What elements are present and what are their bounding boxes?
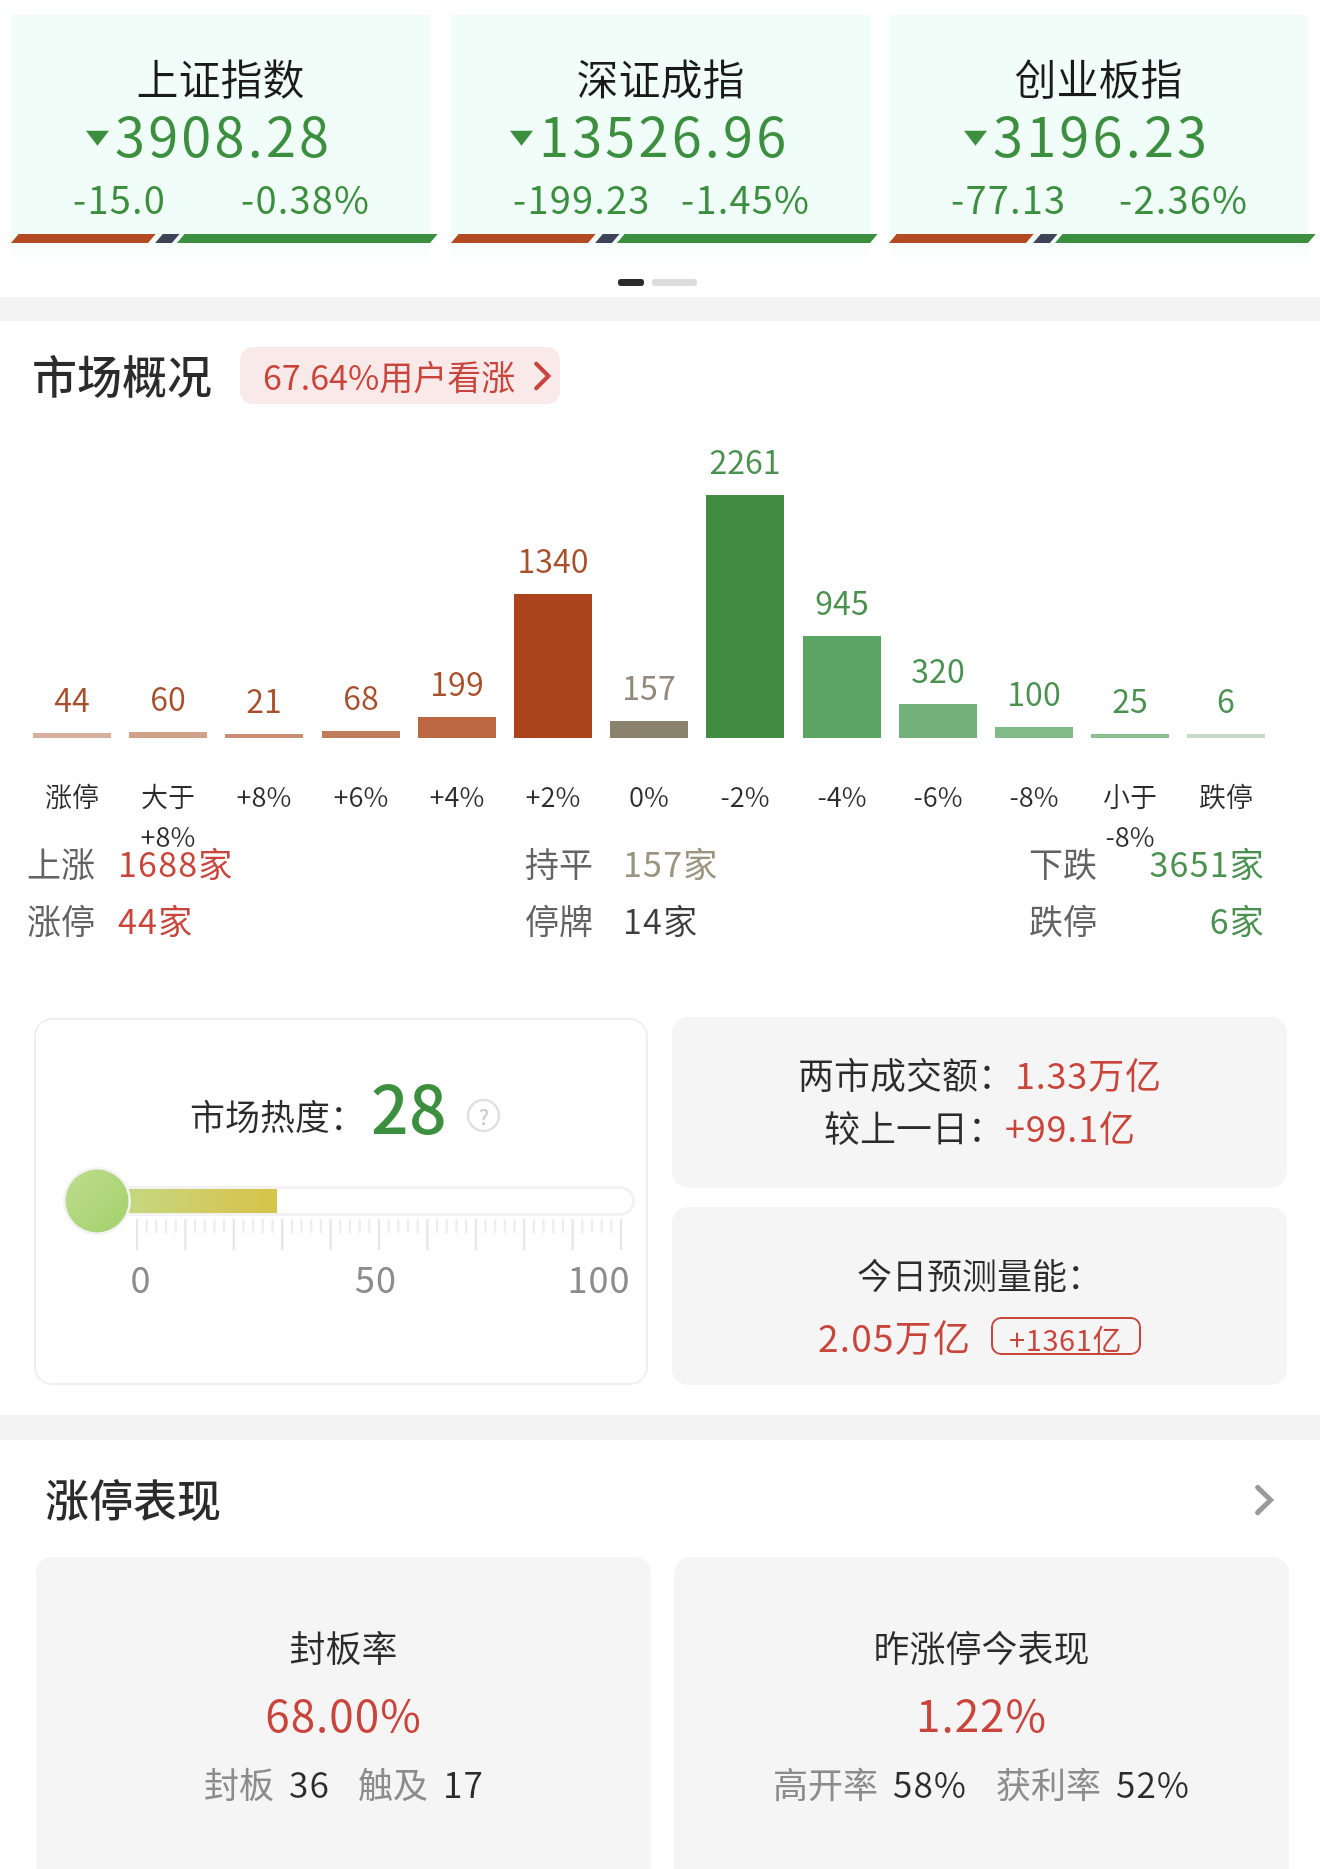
staticText: 52% — [1116, 1757, 1191, 1808]
staticText: 市场热度： — [190, 1089, 366, 1140]
staticText: 945 — [778, 578, 906, 624]
staticText: 50 — [326, 1251, 426, 1303]
staticText: -15.0 — [73, 170, 167, 225]
staticText: 较上一日： — [824, 1100, 1005, 1152]
staticText: +99.1亿 — [1005, 1100, 1136, 1152]
staticText: +2% — [489, 776, 617, 815]
staticText: 60 — [104, 674, 232, 720]
staticText: 157 — [585, 663, 713, 709]
staticText: -0.38% — [241, 170, 371, 225]
staticText: -6% — [874, 776, 1002, 815]
staticText: 6 — [1162, 676, 1290, 722]
staticText: 44家 — [118, 895, 194, 944]
button[interactable]: 67.64%用户看涨 — [240, 347, 560, 404]
staticText: 小于 -8% — [1066, 776, 1194, 855]
staticText: -1.45% — [681, 170, 811, 225]
staticText: 3196.23 — [993, 94, 1211, 172]
staticText: 上涨 — [27, 838, 95, 887]
button[interactable]: 昨涨停今表现 — [674, 1557, 1289, 1869]
staticText: 0 — [91, 1251, 191, 1303]
staticText: 两市成交额： — [798, 1047, 1015, 1099]
staticText: 持平 — [525, 838, 593, 887]
staticText: 上证指数 — [11, 46, 430, 107]
staticText: -199.23 — [513, 170, 651, 225]
staticText: 157家 — [623, 838, 719, 887]
staticText: 深证成指 — [451, 46, 870, 107]
staticText: ? — [479, 1101, 489, 1131]
staticText: 涨停表现 — [45, 1466, 221, 1530]
staticText: 1688家 — [118, 838, 234, 887]
staticText: 68 — [297, 673, 425, 719]
button[interactable]: More — [1234, 1470, 1294, 1530]
staticText: 跌停 — [1162, 776, 1290, 815]
staticText: 3651家 — [1030, 838, 1265, 887]
staticText: 1340 — [489, 536, 617, 582]
staticText: 3908.28 — [115, 94, 333, 172]
staticText: +6% — [297, 776, 425, 815]
staticText: 68.00% — [36, 1681, 651, 1745]
staticText: 100 — [970, 669, 1098, 715]
staticText: -4% — [778, 776, 906, 815]
button[interactable]: 市场热度： — [34, 1018, 648, 1385]
staticText: 高开率 — [773, 1757, 879, 1808]
staticText: 28 — [371, 1057, 448, 1153]
staticText: -2% — [681, 776, 809, 815]
button[interactable]: 今日预测量能： — [672, 1207, 1287, 1385]
staticText: 2261 — [681, 437, 809, 483]
staticText: 36 — [289, 1757, 330, 1808]
staticText: +1361亿 — [1009, 1317, 1123, 1355]
staticText: 0% — [585, 776, 713, 815]
staticText: 1.22% — [674, 1681, 1289, 1745]
staticText: 跌停 — [1029, 895, 1097, 944]
staticText: 创业板指 — [889, 46, 1308, 107]
button[interactable]: 封板率 — [36, 1557, 651, 1869]
staticText: -8% — [970, 776, 1098, 815]
button[interactable]: 深证成指 — [451, 15, 870, 265]
staticText: 44 — [8, 675, 136, 721]
button[interactable]: 两市成交额： — [672, 1017, 1287, 1188]
staticText: -2.36% — [1119, 170, 1249, 225]
staticText: 封板率 — [36, 1620, 651, 1672]
staticText: 触及 — [358, 1757, 429, 1808]
button[interactable]: 上证指数 — [11, 15, 430, 265]
staticText: 封板 — [204, 1757, 275, 1808]
staticText: +4% — [393, 776, 521, 815]
staticText: 67.64%用户看涨 — [263, 351, 516, 400]
staticText: 涨停 — [8, 776, 136, 815]
staticText: 14家 — [623, 895, 699, 944]
staticText: 涨停 — [27, 895, 95, 944]
staticText: 下跌 — [1029, 838, 1097, 887]
staticText: 停牌 — [525, 895, 593, 944]
staticText: 今日预测量能： — [672, 1248, 1287, 1299]
staticText: 320 — [874, 646, 1002, 692]
staticText: 199 — [393, 659, 521, 705]
staticText: 21 — [200, 676, 328, 722]
staticText: 市场概况 — [32, 342, 213, 407]
staticText: +8% — [200, 776, 328, 815]
staticText: 58% — [893, 1757, 968, 1808]
staticText: 100 — [549, 1251, 648, 1303]
staticText: 大于 +8% — [104, 776, 232, 855]
staticText: 6家 — [1030, 895, 1265, 944]
staticText: 17 — [443, 1757, 484, 1808]
staticText: 1.33万亿 — [1015, 1047, 1162, 1099]
staticText: 13526.96 — [539, 94, 790, 172]
staticText: -77.13 — [951, 170, 1067, 225]
staticText: 昨涨停今表现 — [674, 1620, 1289, 1672]
button[interactable]: 创业板指 — [889, 15, 1308, 265]
staticText: 获利率 — [996, 1757, 1102, 1808]
staticText: 25 — [1066, 676, 1194, 722]
staticText: 2.05万亿 — [818, 1309, 972, 1363]
